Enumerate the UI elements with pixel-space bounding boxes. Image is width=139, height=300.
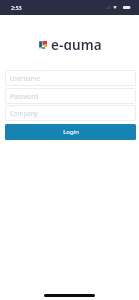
button[interactable]: Login [5, 124, 136, 140]
other: Battery [123, 6, 131, 9]
staticText: Company [10, 109, 38, 117]
button[interactable]: Password [5, 88, 136, 104]
button[interactable]: Username [5, 70, 136, 86]
other: Wi-Fi [113, 6, 117, 9]
other: Cellular signal [106, 6, 110, 9]
other: e-guma logo [39, 41, 47, 49]
staticText: Username [10, 74, 41, 82]
staticText: 2:53 [11, 4, 22, 11]
staticText: e-guma [51, 36, 102, 50]
staticText: Password [10, 92, 38, 100]
button[interactable]: Company [5, 105, 136, 121]
staticText: Login [63, 128, 79, 136]
